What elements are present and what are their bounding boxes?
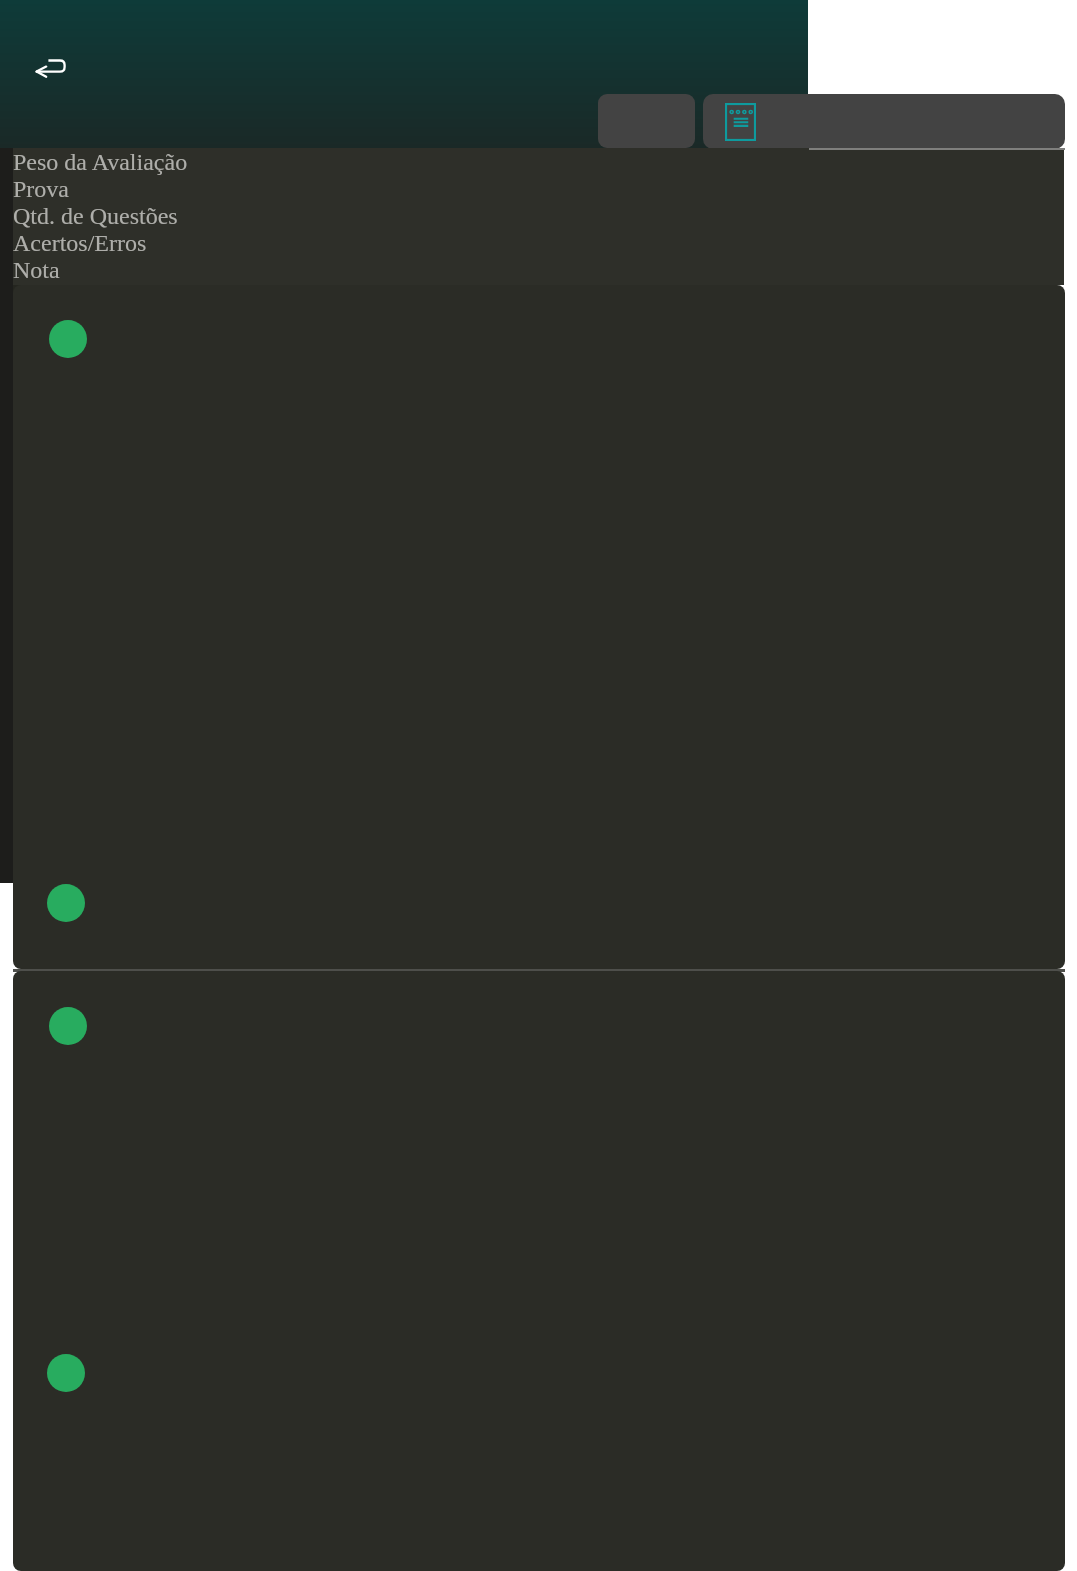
button[interactable]: Avaliação 2 <box>13 971 1065 1571</box>
button[interactable]: Notes <box>703 94 1065 149</box>
staticText: Peso da Avaliação <box>13 149 188 176</box>
staticText: Acertos/Erros <box>13 230 147 257</box>
staticText: Qtd. de Questões <box>13 203 178 230</box>
button[interactable]: Back <box>16 38 84 98</box>
button[interactable]: Tab <box>598 94 695 148</box>
button[interactable]: Avaliação 1 <box>13 285 1065 969</box>
staticText: Prova <box>13 176 69 203</box>
staticText: Nota <box>13 257 60 284</box>
